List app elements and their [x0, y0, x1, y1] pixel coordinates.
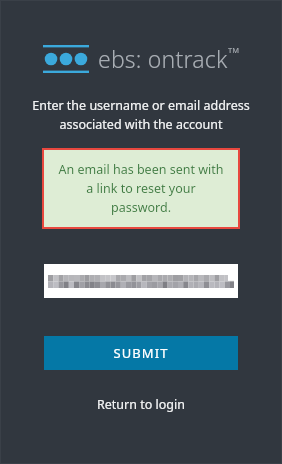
staticText: An email has been sent with a link to re…	[58, 161, 224, 216]
button[interactable]	[44, 264, 238, 298]
staticText: TM	[228, 45, 239, 55]
other: ebs ontrack logo	[43, 45, 89, 73]
staticText: ebs: ontrack	[98, 43, 228, 74]
staticText: Return to login	[97, 396, 185, 413]
staticText: Enter the username or email address asso…	[27, 97, 255, 133]
button[interactable]: SUBMIT	[44, 336, 238, 370]
staticText: SUBMIT	[113, 344, 169, 362]
button[interactable]: Return to login	[87, 392, 195, 417]
